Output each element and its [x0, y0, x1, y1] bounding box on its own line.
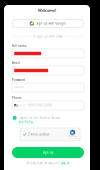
staticText: Sign up with Google	[36, 22, 66, 25]
button[interactable]: Sign up with Google	[12, 19, 84, 28]
staticText: Privacy - Terms	[67, 137, 78, 139]
staticText: +1 (999) 000-0000	[23, 104, 52, 107]
staticText: ✓	[14, 116, 16, 119]
staticText: Welcome!	[38, 8, 56, 13]
staticText: and Policy	[19, 120, 33, 124]
staticText: or sign up with email	[33, 35, 63, 38]
button[interactable]: Already have an account?	[12, 161, 84, 165]
staticText: Sign up	[42, 151, 53, 154]
staticText: ••••••••••	[14, 86, 24, 89]
staticText: reCAPTCHA	[68, 135, 77, 137]
staticText: Password	[12, 78, 25, 82]
button[interactable]: Sign up	[12, 147, 84, 158]
staticText: Already have an account?	[26, 161, 59, 165]
staticText: Email	[12, 61, 20, 65]
button[interactable]: ✓	[13, 116, 85, 124]
staticText: Log in	[61, 161, 70, 165]
staticText: I agree to the Terms of Service	[19, 116, 61, 120]
staticText: Phone	[12, 96, 22, 100]
staticText: Full name	[12, 44, 27, 48]
staticText: I'm not a robot	[28, 133, 49, 136]
